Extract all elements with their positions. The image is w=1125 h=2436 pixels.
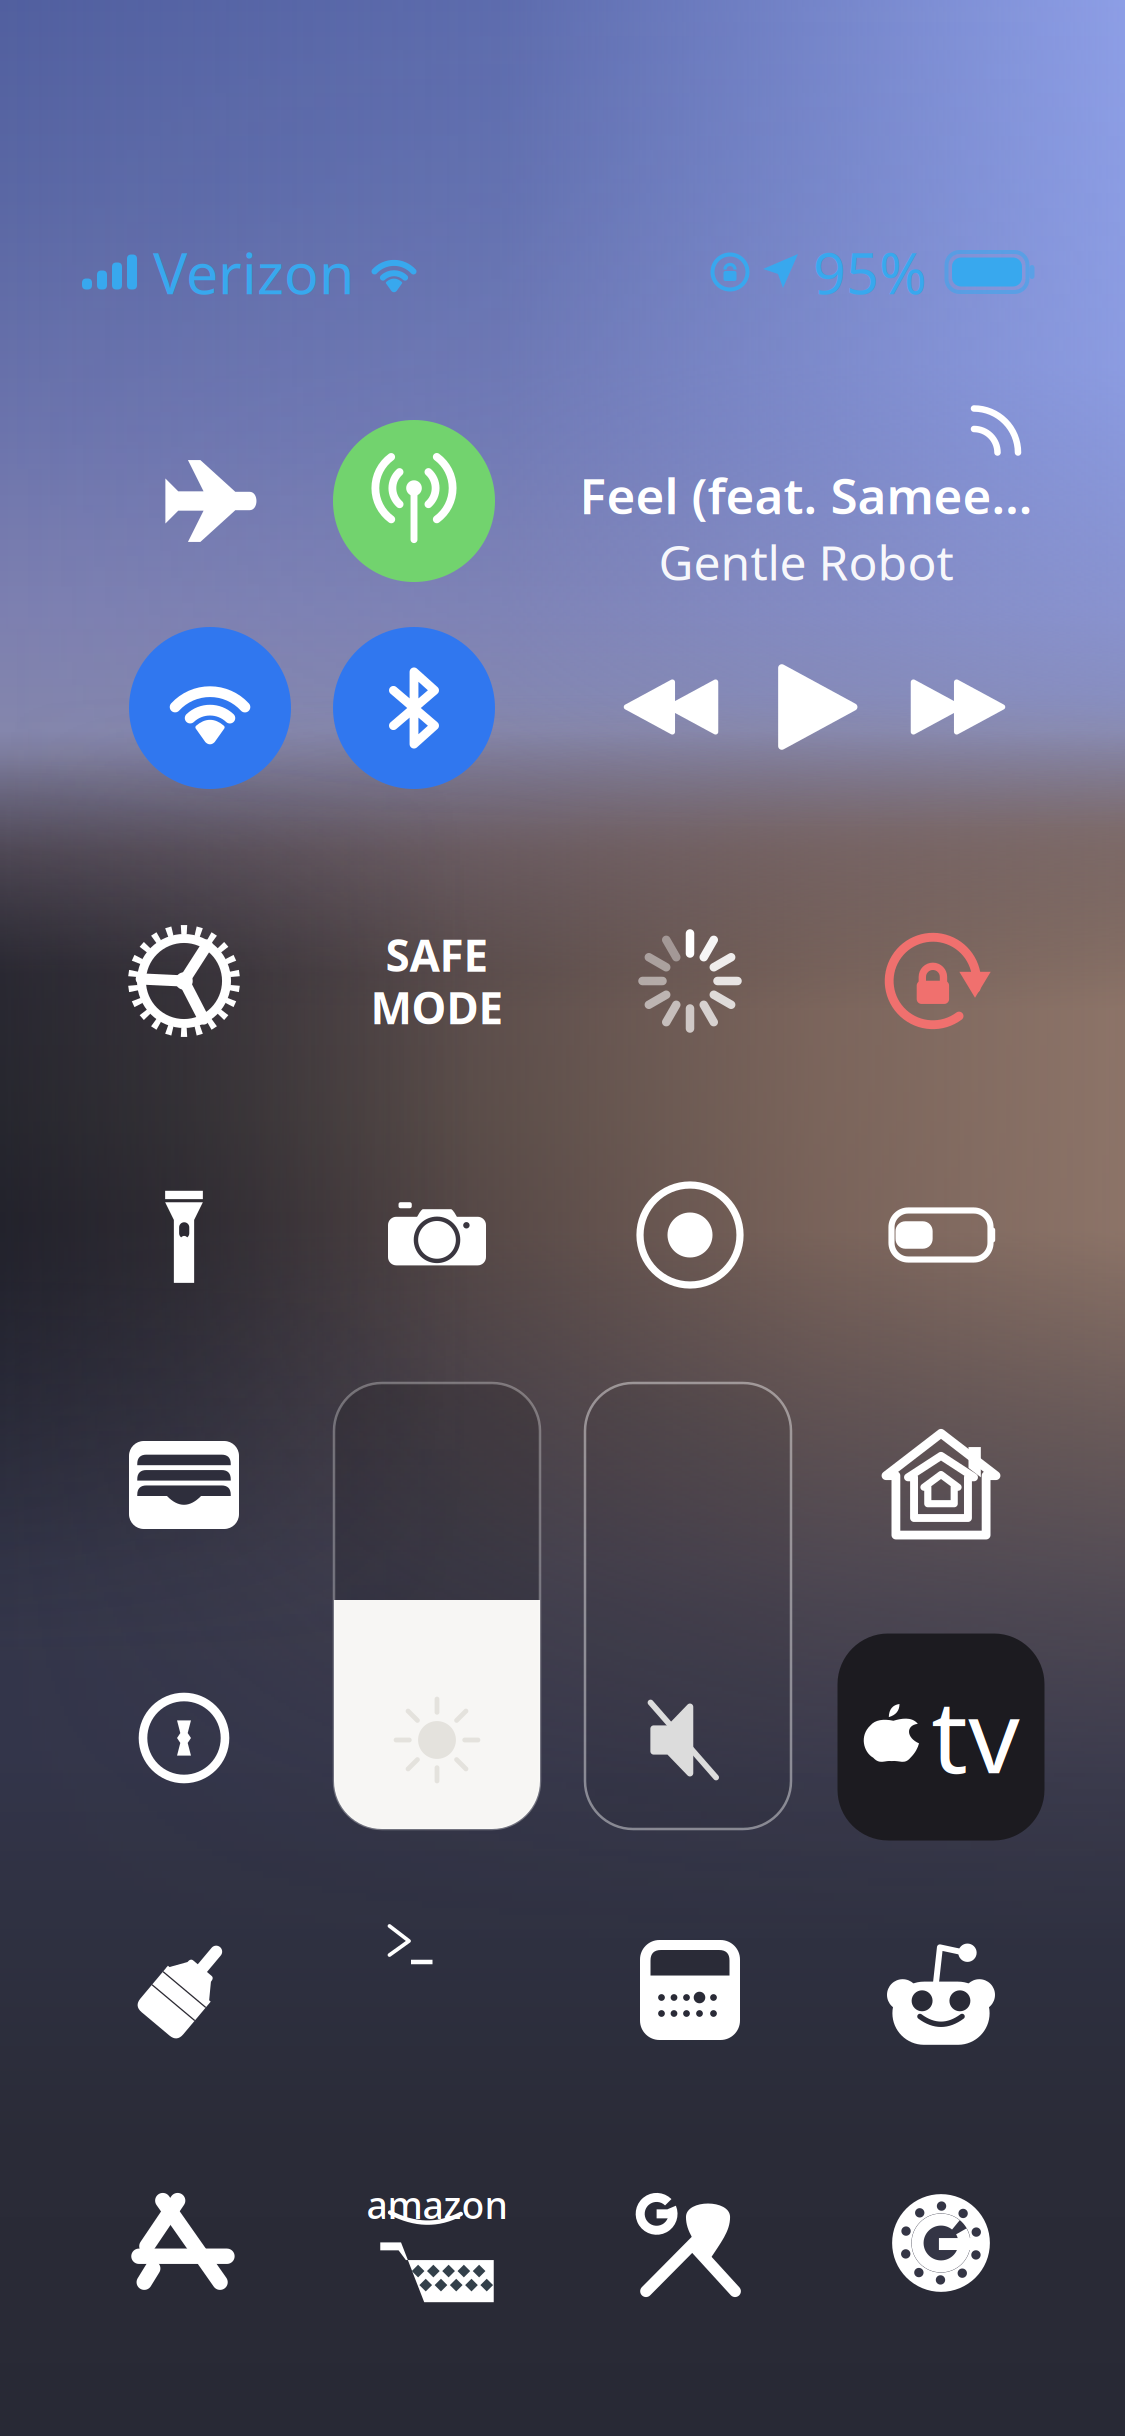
staticText: SAFE	[385, 926, 488, 984]
button[interactable]: Screen Recording	[590, 1135, 790, 1335]
button[interactable]: Airplane Mode	[130, 421, 290, 581]
button[interactable]: Wi-Fi	[129, 627, 291, 789]
staticText: tv	[931, 1667, 1019, 1801]
button[interactable]: Respring	[841, 881, 1041, 1081]
button[interactable]: Previous Track	[601, 647, 741, 767]
staticText: MODE	[370, 978, 503, 1036]
button[interactable]: Clean	[84, 1890, 284, 2090]
button[interactable]: Apple TV Remote	[837, 1633, 1044, 1840]
button[interactable]: Activity	[590, 881, 790, 1081]
button[interactable]: 1Password	[84, 1638, 284, 1838]
button[interactable]: Google Maps	[590, 2143, 790, 2343]
button[interactable]: Flashlight	[84, 1135, 284, 1335]
staticText: 95%	[813, 234, 927, 310]
button[interactable]: Reddit	[841, 1890, 1041, 2090]
button[interactable]: Mint	[841, 2143, 1041, 2343]
button[interactable]: AirPlay	[951, 385, 1041, 475]
button[interactable]: Brightness	[334, 1383, 540, 1829]
button[interactable]: Settings	[84, 881, 284, 1081]
button[interactable]: Cellular Data	[333, 420, 495, 582]
button[interactable]: Terminal	[311, 1847, 511, 2047]
staticText: Feel (feat. Samee…	[579, 462, 1032, 528]
button[interactable]: Bluetooth	[333, 627, 495, 789]
button[interactable]: Next Track	[888, 647, 1028, 767]
button[interactable]: Volume	[585, 1383, 791, 1829]
staticText: amazon	[366, 2180, 507, 2229]
button[interactable]: Play	[747, 647, 887, 767]
button[interactable]: Wallet	[84, 1385, 284, 1585]
button[interactable]: App Store	[84, 2143, 284, 2343]
button[interactable]: Safe Mode	[337, 881, 537, 1081]
button[interactable]: Amazon	[337, 2143, 537, 2343]
button[interactable]: Low Power Mode	[841, 1135, 1041, 1335]
staticText: Verizon	[153, 234, 354, 310]
button[interactable]: Launcher	[590, 1890, 790, 2090]
button[interactable]: Home	[841, 1385, 1041, 1585]
button[interactable]: Camera	[337, 1135, 537, 1335]
staticText: Gentle Robot	[658, 530, 953, 594]
